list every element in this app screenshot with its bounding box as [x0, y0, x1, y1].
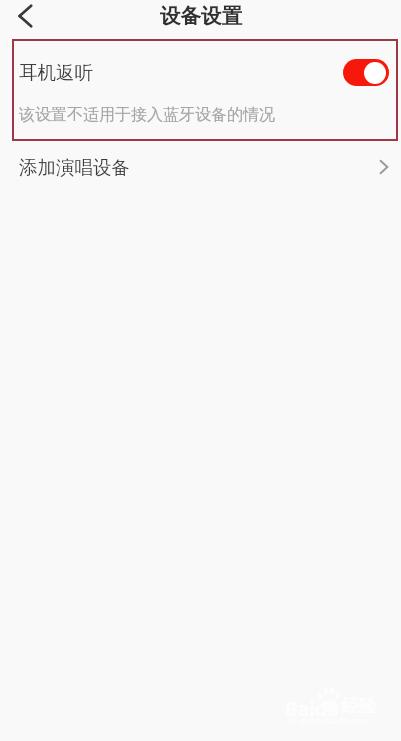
staticText: 添加演唱设备: [19, 156, 130, 179]
button[interactable]: 添加演唱设备: [0, 146, 401, 188]
button[interactable]: Headphone monitoring switch, on: [343, 59, 389, 86]
button[interactable]: 耳机返听: [12, 39, 398, 105]
button[interactable]: Back: [0, 0, 48, 31]
staticText: 该设置不适用于接入蓝牙设备的情况: [19, 105, 275, 125]
staticText: 设备设置: [160, 3, 242, 29]
staticText: 耳机返听: [19, 61, 93, 84]
